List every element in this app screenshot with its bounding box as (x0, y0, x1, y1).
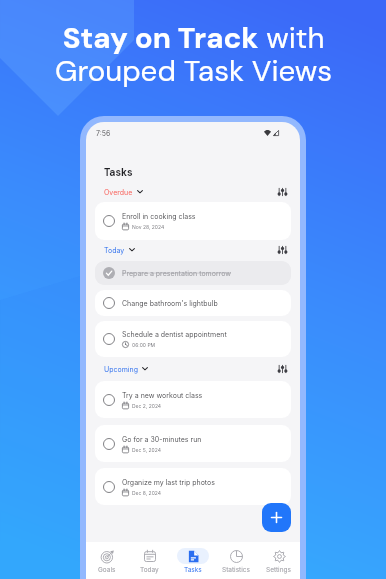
staticText: Upcoming (104, 365, 138, 373)
button[interactable]: Try a new workout class (95, 381, 291, 418)
staticText: Dec 2, 2024 (132, 403, 162, 409)
button[interactable]: Go for a 30-minutes run (95, 425, 291, 462)
button[interactable]: Enroll in cooking class (95, 202, 291, 240)
button[interactable]: Prepare a presentation tomorrow (95, 261, 291, 285)
button[interactable]: Overdue (104, 187, 143, 196)
button[interactable]: Change bathroom's lightbulb (95, 290, 291, 316)
staticText: Go for a 30-minutes run (122, 435, 202, 443)
staticText: Overdue (104, 188, 133, 196)
button[interactable]: Statistics (214, 542, 257, 579)
staticText: Dec 5, 2024 (132, 447, 161, 453)
button[interactable]: Sort and filter (278, 365, 287, 373)
staticText: Statistics (222, 566, 250, 574)
staticText: Try a new workout class (122, 391, 203, 399)
button[interactable]: Settings (257, 542, 300, 579)
button[interactable]: Tasks (171, 542, 214, 579)
staticText: Goals (98, 566, 116, 574)
button[interactable]: Upcoming (104, 364, 148, 373)
staticText: Schedule a dentist appointment (122, 330, 227, 338)
staticText: Tasks (184, 566, 202, 574)
staticText: Organize my last trip photos (122, 478, 215, 486)
button[interactable]: Organize my last trip photos (95, 468, 291, 505)
staticText: Today (140, 566, 159, 574)
staticText: Stay on Track with Grouped Task Views (55, 19, 332, 91)
button[interactable]: Today (104, 245, 135, 254)
button[interactable]: Goals (86, 542, 128, 579)
button[interactable]: Sort and filter (278, 246, 287, 254)
staticText: 7:56 (96, 129, 111, 137)
staticText: 06:00 PM (132, 342, 156, 348)
staticText: Tasks (104, 166, 133, 179)
staticText: Dec 8, 2024 (132, 490, 162, 496)
staticText: Today (104, 246, 125, 254)
button[interactable]: Schedule a dentist appointment (95, 321, 291, 357)
button[interactable]: Sort and filter (278, 188, 287, 196)
button[interactable]: Add task (262, 503, 291, 532)
staticText: Prepare a presentation tomorrow (122, 269, 231, 277)
staticText: Settings (266, 566, 291, 574)
staticText: Nov 28, 2024 (132, 224, 165, 230)
button[interactable]: Today (128, 542, 171, 579)
staticText: Change bathroom's lightbulb (122, 299, 218, 307)
staticText: Enroll in cooking class (122, 212, 196, 220)
